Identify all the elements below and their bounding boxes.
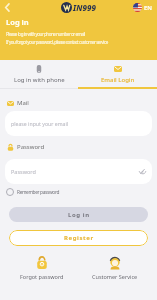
staticText: IN999: [73, 2, 96, 13]
staticText: Email Login: [101, 76, 135, 84]
staticText: If you forgot your password, please cont…: [6, 39, 108, 45]
staticText: Please log in with your phone number or …: [6, 31, 85, 37]
button[interactable]: Log in with phone: [0, 60, 78, 89]
staticText: Password: [11, 168, 36, 175]
staticText: please input your email: [11, 120, 69, 127]
button[interactable]: Password: [5, 159, 152, 184]
button[interactable]: Forgot password: [5, 256, 78, 280]
staticText: Forgot password: [20, 273, 64, 280]
staticText: Log in with phone: [14, 76, 65, 84]
button[interactable]: Customer Service: [78, 256, 152, 280]
button[interactable]: please input your email: [5, 111, 152, 136]
button[interactable]: Register: [9, 230, 148, 246]
staticText: Register: [64, 234, 94, 242]
button[interactable]: [0, 0, 15, 15]
button[interactable]: Log in: [9, 207, 148, 222]
staticText: Log in: [68, 211, 90, 219]
button[interactable]: Email Login: [78, 60, 157, 89]
staticText: Mail: [17, 99, 29, 107]
staticText: Remember password: [17, 189, 60, 196]
button[interactable]: EN: [133, 3, 152, 12]
staticText: EN: [144, 4, 152, 12]
button[interactable]: Remember password: [5, 188, 60, 196]
staticText: Log in: [6, 17, 29, 27]
staticText: Customer Service: [92, 273, 138, 280]
staticText: Password: [17, 143, 45, 151]
